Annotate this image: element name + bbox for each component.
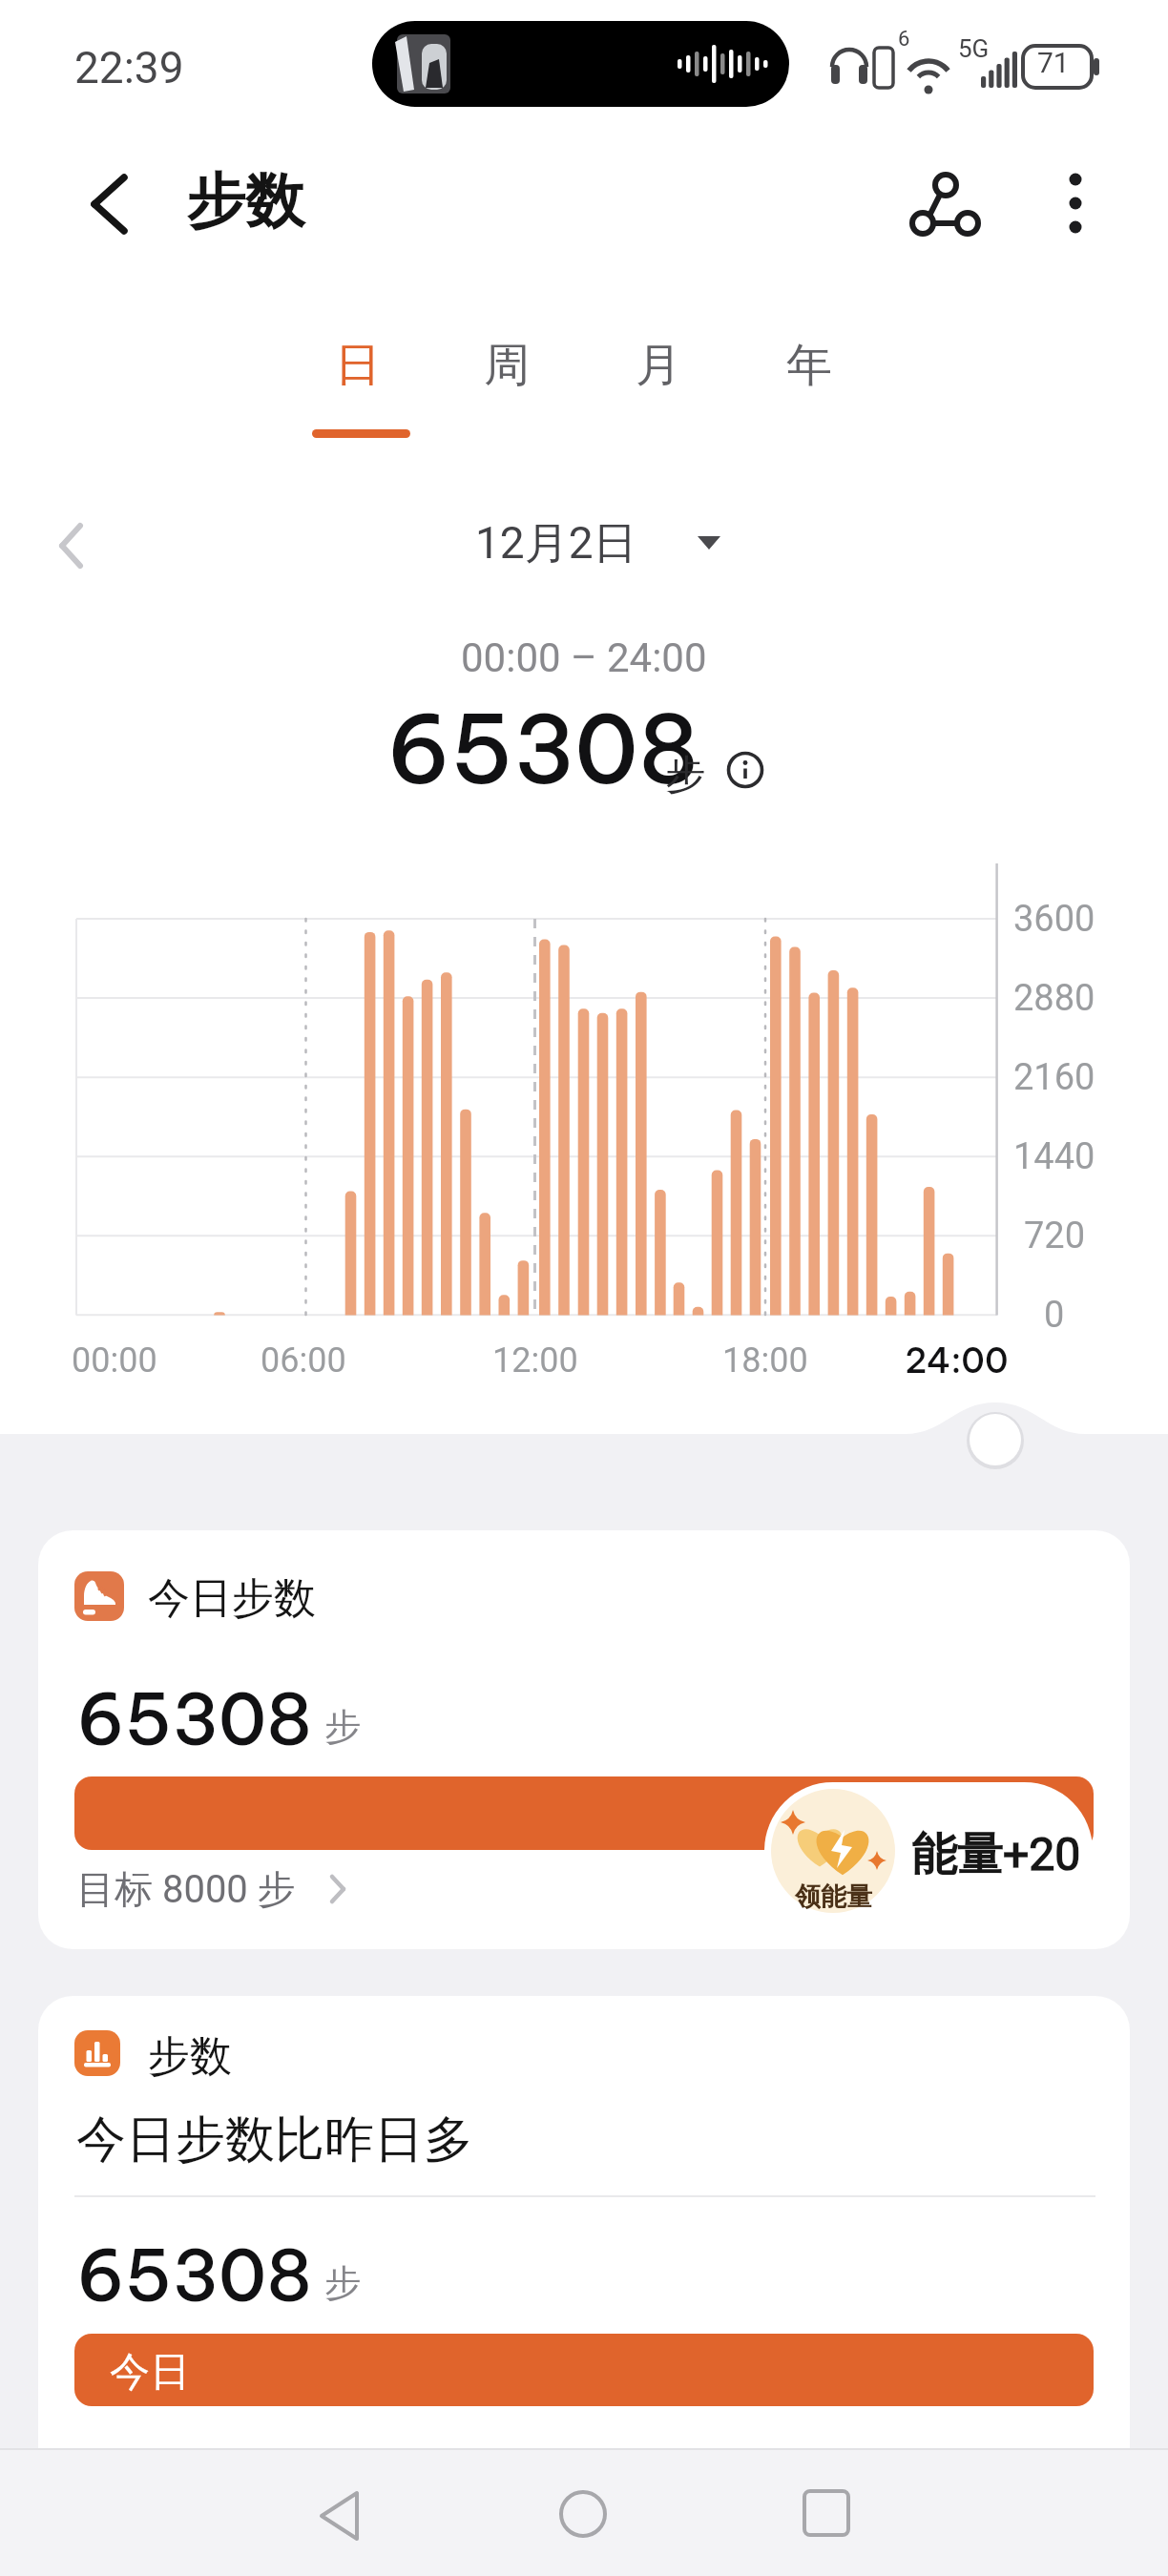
button[interactable]: 12月2日 bbox=[13, 515, 1168, 572]
staticText: 能量+20 bbox=[911, 1826, 1081, 1883]
staticText: 今日步数 bbox=[148, 1572, 316, 1625]
button[interactable] bbox=[764, 1782, 1093, 1919]
staticText: 今日步数比昨日多 bbox=[76, 2109, 473, 2171]
staticText: 65308 bbox=[76, 1674, 313, 1764]
staticText: 目标 8000 步 bbox=[76, 1865, 296, 1913]
staticText: 步 bbox=[665, 750, 705, 800]
staticText: 00:00 – 24:00 bbox=[461, 634, 707, 681]
staticText: 2160 bbox=[1013, 1056, 1095, 1099]
button[interactable]: 周 bbox=[449, 332, 564, 399]
staticText: 领能量 bbox=[795, 1880, 872, 1913]
button[interactable] bbox=[303, 2480, 376, 2552]
button[interactable] bbox=[84, 172, 132, 239]
staticText: 日 bbox=[335, 337, 381, 394]
button[interactable]: 月 bbox=[601, 332, 716, 399]
button[interactable] bbox=[48, 520, 95, 571]
staticText: 月 bbox=[636, 337, 681, 394]
staticText: 今日 bbox=[110, 2347, 190, 2398]
staticText: 22:39 bbox=[74, 42, 184, 93]
staticText: 年 bbox=[786, 337, 832, 394]
button[interactable] bbox=[312, 429, 410, 438]
button[interactable] bbox=[1045, 153, 1106, 248]
staticText: 6 bbox=[898, 27, 910, 52]
staticText: 00:00 bbox=[72, 1340, 157, 1381]
staticText: 步 bbox=[324, 2260, 361, 2306]
staticText: 720 bbox=[1024, 1215, 1086, 1257]
staticText: 0 bbox=[1044, 1294, 1065, 1337]
staticText: 65308 bbox=[76, 2231, 313, 2320]
staticText: 步数 bbox=[148, 2030, 232, 2083]
staticText: 12月2日 bbox=[475, 516, 637, 571]
button[interactable]: 日 bbox=[301, 332, 415, 399]
staticText: 71 bbox=[1037, 46, 1070, 79]
staticText: 5G bbox=[958, 34, 990, 63]
button[interactable]: 步数 bbox=[38, 1996, 1130, 2448]
staticText: 3600 bbox=[1013, 898, 1095, 941]
staticText: 步 bbox=[324, 1704, 361, 1750]
staticText: 周 bbox=[484, 337, 530, 394]
staticText: 65308 bbox=[386, 690, 699, 808]
staticText: 1440 bbox=[1013, 1135, 1095, 1178]
staticText: 12:00 bbox=[492, 1340, 578, 1381]
staticText: 步数 bbox=[186, 164, 304, 239]
staticText: 18:00 bbox=[722, 1340, 808, 1381]
button[interactable] bbox=[887, 153, 992, 248]
button[interactable]: 今日步数 bbox=[38, 1530, 1130, 1949]
staticText: 06:00 bbox=[261, 1340, 346, 1381]
staticText: 24:00 bbox=[905, 1339, 1009, 1382]
button[interactable] bbox=[790, 2477, 863, 2549]
button[interactable]: 年 bbox=[752, 332, 866, 399]
button[interactable] bbox=[547, 2478, 619, 2550]
staticText: 2880 bbox=[1013, 977, 1095, 1020]
